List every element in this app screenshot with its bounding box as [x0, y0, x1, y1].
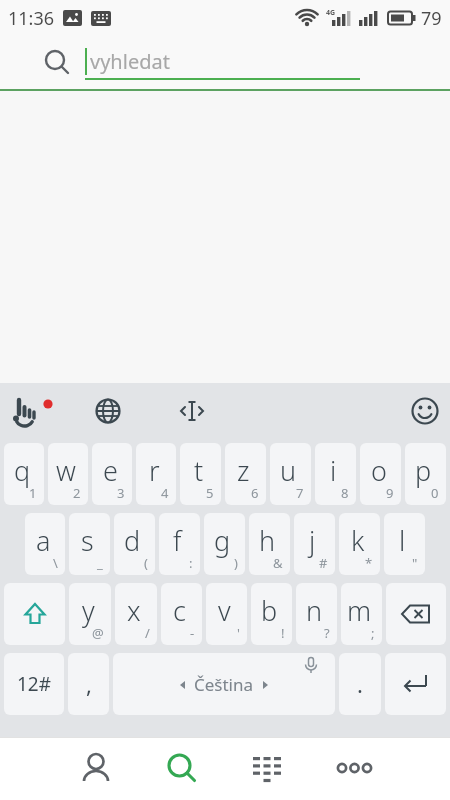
staticText: ! [281, 624, 285, 642]
staticText: a [36, 522, 51, 559]
button[interactable]: l [384, 513, 425, 575]
staticText: ) [234, 554, 238, 572]
button[interactable] [4, 583, 65, 645]
staticText: g [214, 522, 231, 559]
button[interactable]: i [315, 443, 356, 505]
button[interactable]: d [114, 513, 155, 575]
staticText: k [351, 522, 365, 559]
button[interactable]: a [25, 513, 65, 575]
staticText: m [347, 592, 372, 629]
staticText: x [127, 592, 141, 629]
staticText: - [190, 624, 195, 642]
staticText: w [56, 452, 76, 489]
staticText: , [86, 669, 92, 699]
button[interactable] [408, 394, 442, 428]
staticText: o [371, 452, 387, 489]
button[interactable]: b [251, 583, 292, 645]
button[interactable] [8, 389, 56, 433]
button[interactable] [92, 395, 124, 427]
staticText: b [261, 592, 278, 629]
staticText: e [103, 452, 118, 489]
staticText: y [82, 592, 95, 629]
button[interactable]: w [48, 443, 88, 505]
staticText: n [306, 592, 323, 629]
button[interactable]: t [180, 443, 221, 505]
button[interactable] [385, 653, 446, 715]
staticText: l [399, 522, 406, 559]
staticText: . [357, 669, 363, 699]
button[interactable]: g [204, 513, 245, 575]
staticText: h [259, 522, 276, 559]
staticText: 1 [29, 484, 37, 502]
button[interactable]: n [296, 583, 337, 645]
staticText: c [173, 592, 186, 629]
staticText: Čeština [194, 673, 254, 696]
staticText: 4G [326, 8, 336, 18]
staticText: 4 [161, 484, 169, 502]
staticText: 6 [251, 484, 259, 502]
staticText: vyhledat [90, 48, 170, 75]
staticText: * [365, 554, 373, 572]
button[interactable]: o [360, 443, 401, 505]
button[interactable]: . [339, 653, 381, 715]
staticText: ; [371, 624, 375, 642]
staticText: f [173, 522, 182, 559]
button[interactable]: m [341, 583, 382, 645]
staticText: 8 [341, 484, 349, 502]
staticText: 2 [73, 484, 81, 502]
staticText: 11:36 [8, 6, 55, 31]
button[interactable]: Čeština [113, 653, 335, 715]
staticText: p [415, 452, 432, 489]
staticText: 5 [206, 484, 214, 502]
staticText: t [194, 452, 204, 489]
staticText: ( [144, 554, 148, 572]
staticText: r [149, 452, 160, 489]
staticText: j [309, 522, 316, 559]
staticText: & [273, 554, 283, 572]
button[interactable] [53, 738, 139, 800]
button[interactable]: 12# [4, 653, 64, 715]
button[interactable]: c [161, 583, 202, 645]
staticText: 0 [431, 484, 439, 502]
button[interactable] [386, 583, 446, 645]
staticText: _ [97, 554, 103, 572]
staticText: ? [324, 624, 330, 642]
staticText: / [145, 624, 150, 642]
staticText: q [14, 452, 31, 489]
staticText: # [319, 554, 328, 572]
staticText: d [124, 522, 141, 559]
button[interactable] [225, 738, 311, 800]
staticText: " [412, 554, 418, 572]
button[interactable]: z [225, 443, 266, 505]
button[interactable]: s [69, 513, 110, 575]
staticText: \ [53, 554, 58, 572]
staticText: v [218, 592, 231, 629]
staticText: u [280, 452, 297, 489]
button[interactable] [311, 738, 397, 800]
button[interactable] [139, 738, 225, 800]
button[interactable]: , [68, 653, 109, 715]
staticText: 12# [17, 671, 52, 697]
staticText: @ [92, 624, 104, 642]
button[interactable]: p [405, 443, 446, 505]
staticText: 7 [296, 484, 304, 502]
button[interactable]: v [206, 583, 247, 645]
staticText: : [189, 554, 193, 572]
button[interactable]: u [270, 443, 311, 505]
button[interactable]: q [4, 443, 44, 505]
staticText: 79 [421, 6, 442, 31]
button[interactable]: y [69, 583, 111, 645]
button[interactable]: k [339, 513, 380, 575]
staticText: z [237, 452, 250, 489]
staticText: s [81, 522, 94, 559]
button[interactable]: f [159, 513, 200, 575]
button[interactable] [176, 395, 208, 427]
staticText: i [330, 452, 337, 489]
staticText: 3 [117, 484, 125, 502]
button[interactable]: h [249, 513, 290, 575]
button[interactable]: x [115, 583, 157, 645]
button[interactable]: e [92, 443, 132, 505]
button[interactable]: j [294, 513, 335, 575]
button[interactable]: r [136, 443, 176, 505]
button[interactable]: vyhledat [0, 36, 450, 89]
